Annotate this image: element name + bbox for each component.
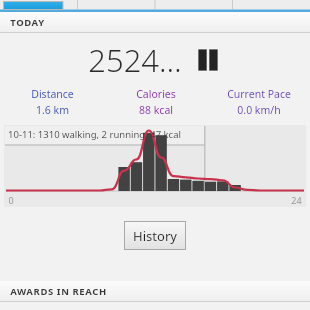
staticText: Distance xyxy=(31,87,74,101)
staticText: 24 xyxy=(291,194,302,206)
staticText: 88 kcal xyxy=(139,103,173,117)
staticText: 10-11: 1310 walking, 2 running, 47 kcal xyxy=(8,128,181,141)
staticText: 0.0 km/h xyxy=(237,103,281,117)
button[interactable]: Calories xyxy=(104,86,207,118)
staticText: TODAY xyxy=(10,16,45,29)
staticText: Calories xyxy=(136,87,176,101)
staticText: 1.6 km xyxy=(36,103,69,117)
button[interactable]: Current Pace xyxy=(207,86,310,118)
button[interactable]: Pause xyxy=(194,47,222,73)
button[interactable]: 10-11: 1310 walking, 2 running, 47 kcal xyxy=(4,125,306,207)
staticText: History xyxy=(133,227,177,245)
staticText: AWARDS IN REACH xyxy=(10,285,107,298)
button[interactable]: History xyxy=(125,222,185,249)
staticText: 2524… xyxy=(88,39,182,81)
staticText: Current Pace xyxy=(227,87,291,101)
button[interactable]: Distance xyxy=(0,86,104,118)
staticText: 0 xyxy=(8,194,14,206)
